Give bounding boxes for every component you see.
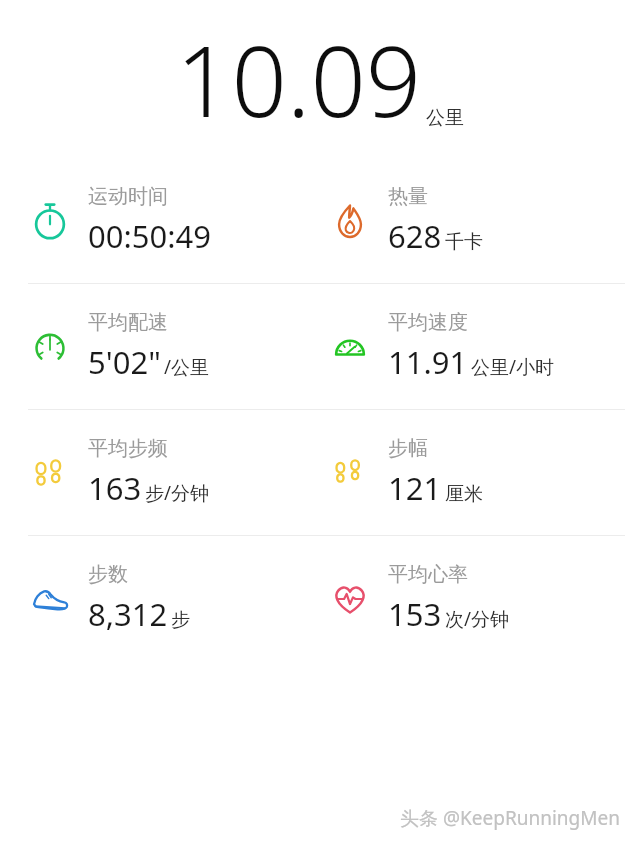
other: Average heart rate: [326, 575, 374, 623]
staticText: 11.91: [388, 341, 468, 383]
button[interactable]: Steps: [0, 536, 320, 661]
staticText: 153: [388, 593, 442, 635]
staticText: 厘米: [445, 482, 483, 506]
button[interactable]: Stride length: [320, 410, 640, 535]
staticText: 121: [388, 467, 442, 509]
staticText: 公里: [426, 106, 464, 130]
staticText: 步: [171, 608, 190, 632]
other: Cadence: [26, 449, 74, 497]
other: Average pace: [26, 323, 74, 371]
staticText: 次/分钟: [445, 606, 510, 632]
staticText: 平均心率: [388, 562, 468, 587]
staticText: 00:50:49: [88, 215, 212, 257]
staticText: /公里: [164, 354, 210, 380]
staticText: 运动时间: [88, 184, 168, 209]
staticText: 头条 @KeepRunningMen: [400, 805, 620, 831]
button[interactable]: Duration: [0, 158, 320, 283]
staticText: 平均配速: [88, 310, 168, 335]
staticText: 公里/小时: [471, 354, 555, 380]
staticText: 步/分钟: [145, 480, 210, 506]
other: Average speed: [326, 323, 374, 371]
staticText: 10.09: [176, 13, 422, 145]
button[interactable]: Calories: [320, 158, 640, 283]
staticText: 5'02": [88, 341, 161, 383]
staticText: 步数: [88, 562, 128, 587]
button[interactable]: Average speed: [320, 284, 640, 409]
staticText: 步幅: [388, 436, 428, 461]
staticText: 平均步频: [88, 436, 168, 461]
staticText: 千卡: [445, 230, 483, 254]
staticText: 平均速度: [388, 310, 468, 335]
button[interactable]: Average heart rate: [320, 536, 640, 661]
staticText: 628: [388, 215, 442, 257]
other: Calories: [326, 197, 374, 245]
other: Steps: [26, 575, 74, 623]
staticText: 8,312: [88, 593, 168, 635]
button[interactable]: Cadence: [0, 410, 320, 535]
other: Duration: [26, 197, 74, 245]
button[interactable]: Average pace: [0, 284, 320, 409]
staticText: 163: [88, 467, 142, 509]
staticText: 热量: [388, 184, 428, 209]
other: Stride length: [326, 449, 374, 497]
